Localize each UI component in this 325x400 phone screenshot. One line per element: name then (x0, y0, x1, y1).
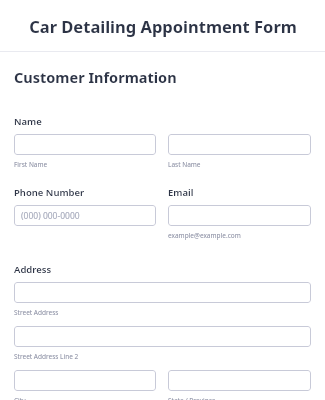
staticText: Email (168, 186, 194, 199)
staticText: First Name (14, 160, 48, 169)
staticText: Street Address Line 2 (14, 352, 79, 361)
staticText: Last Name (168, 160, 201, 169)
staticText: Street Address (14, 308, 59, 317)
staticText: State / Province (168, 396, 216, 400)
button[interactable] (168, 134, 311, 155)
button[interactable] (14, 370, 156, 391)
staticText: Address (14, 263, 52, 276)
staticText: City (14, 396, 26, 400)
staticText: Phone Number (14, 186, 85, 199)
staticText: Name (14, 115, 42, 128)
staticText: (000) 000-0000 (21, 210, 80, 222)
button[interactable] (14, 326, 311, 347)
staticText: Car Detailing Appointment Form (29, 15, 297, 37)
button[interactable] (168, 205, 311, 226)
button[interactable] (14, 282, 311, 303)
staticText: Customer Information (14, 67, 177, 87)
button[interactable]: (000) 000-0000 (14, 205, 156, 226)
button[interactable] (14, 134, 156, 155)
staticText: example@example.com (168, 231, 241, 240)
button[interactable] (168, 370, 311, 391)
